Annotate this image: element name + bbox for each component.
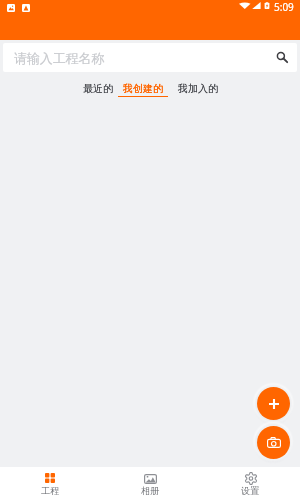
button[interactable]: 请输入工程名称 xyxy=(3,43,297,72)
button[interactable]: Take photo xyxy=(257,426,290,459)
staticText: 设置 xyxy=(241,485,260,497)
staticText: 我创建的 xyxy=(123,82,163,95)
button[interactable]: 我加入的 xyxy=(178,73,218,95)
staticText: 5:09 xyxy=(274,0,294,14)
staticText: 我加入的 xyxy=(178,82,218,95)
staticText: 相册 xyxy=(141,485,160,497)
button[interactable]: Search xyxy=(267,43,297,72)
button[interactable]: 工程 xyxy=(0,467,100,500)
button[interactable]: 我创建的 xyxy=(118,73,168,97)
staticText: 工程 xyxy=(41,485,60,497)
button[interactable]: 最近的 xyxy=(83,73,113,95)
staticText: 请输入工程名称 xyxy=(14,51,105,67)
button[interactable]: 设置 xyxy=(200,467,300,500)
button[interactable]: 相册 xyxy=(100,467,200,500)
staticText: 最近的 xyxy=(83,82,113,95)
button[interactable]: New project xyxy=(257,387,290,420)
staticText: 我创建的 xyxy=(123,82,163,95)
staticText: 最近的 xyxy=(83,82,113,95)
staticText: 我加入的 xyxy=(178,82,218,95)
